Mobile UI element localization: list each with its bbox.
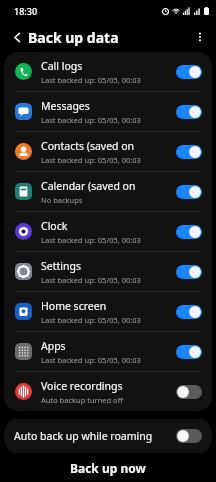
button[interactable]: Home screen	[4, 292, 212, 331]
button[interactable]: Off	[176, 385, 202, 399]
button[interactable]: Auto back up while roaming	[4, 419, 212, 453]
staticText: 18:30	[14, 5, 38, 17]
button[interactable]: Voice recordings	[4, 372, 212, 411]
staticText: Home screen	[41, 299, 107, 313]
button[interactable]: More options	[189, 26, 211, 48]
button[interactable]: Apps	[4, 332, 212, 371]
staticText: Back up data	[28, 28, 119, 47]
button[interactable]: On	[176, 185, 202, 199]
button[interactable]: Calendar (saved on phone)	[4, 172, 212, 211]
staticText: Contacts (saved on phone)	[41, 139, 170, 153]
button[interactable]: Messages	[4, 92, 212, 131]
button[interactable]: Call logs	[4, 52, 212, 91]
button[interactable]: Settings	[4, 252, 212, 291]
staticText: Back up now	[70, 460, 146, 476]
staticText: Apps	[41, 339, 66, 353]
button[interactable]: On	[176, 65, 202, 79]
button[interactable]: On	[176, 305, 202, 319]
button[interactable]: Contacts (saved on phone)	[4, 132, 212, 171]
button[interactable]: Back	[6, 26, 28, 48]
staticText: Clock	[41, 219, 68, 233]
staticText: Last backed up: 05/05, 00:03	[41, 155, 141, 165]
button[interactable]: Back up now	[0, 453, 216, 482]
button[interactable]: Off	[176, 429, 202, 443]
button[interactable]: Clock	[4, 212, 212, 251]
staticText: Calendar (saved on phone)	[41, 179, 170, 193]
staticText: Call logs	[41, 59, 83, 73]
staticText: Settings	[41, 259, 81, 273]
staticText: Last backed up: 05/05, 00:03	[41, 75, 141, 85]
button[interactable]: On	[176, 145, 202, 159]
staticText: Last backed up: 05/05, 00:03	[41, 115, 141, 125]
staticText: Auto back up while roaming	[14, 429, 176, 443]
staticText: Voice recordings	[41, 379, 123, 393]
staticText: Last backed up: 05/05, 00:03	[41, 235, 141, 245]
button[interactable]: On	[176, 225, 202, 239]
staticText: Messages	[41, 99, 90, 113]
button[interactable]: On	[176, 105, 202, 119]
button[interactable]: On	[176, 345, 202, 359]
staticText: Last backed up: 05/05, 00:03	[41, 275, 141, 285]
button[interactable]: On	[176, 265, 202, 279]
staticText: Last backed up: 05/05, 00:03	[41, 315, 141, 325]
staticText: No backups	[41, 195, 83, 205]
staticText: Last backed up: 05/05, 00:03	[41, 355, 141, 365]
staticText: Auto backup turned off	[41, 395, 123, 405]
